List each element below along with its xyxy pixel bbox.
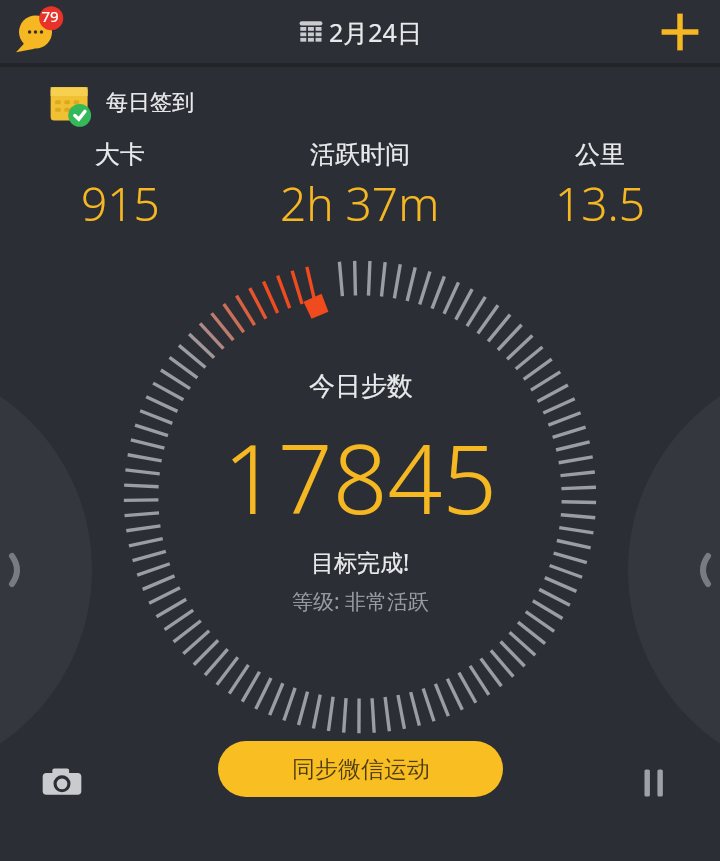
staticText: 13.5 (555, 172, 646, 235)
button[interactable]: 每日签到 (48, 81, 194, 125)
staticText: 同步微信运动 (292, 755, 430, 784)
button[interactable]: 活跃时间 (240, 139, 480, 235)
staticText: 2月24日 (329, 15, 422, 49)
staticText: 大卡 (95, 139, 145, 170)
staticText: 17845 (223, 411, 498, 542)
button[interactable]: 同步微信运动 (218, 741, 503, 797)
button[interactable]: 2月24日 (298, 15, 422, 49)
button[interactable]: 大卡 (0, 139, 240, 235)
staticText: 79 (39, 6, 61, 26)
staticText: 每日签到 (106, 89, 194, 117)
staticText: 今日步数 (309, 370, 413, 403)
staticText: 活跃时间 (310, 139, 410, 170)
button[interactable]: Add (656, 8, 704, 56)
staticText: 915 (81, 172, 160, 235)
button[interactable]: Messages (12, 4, 68, 60)
button[interactable]: 公里 (480, 139, 720, 235)
staticText: 公里 (575, 139, 625, 170)
staticText: 目标完成! (311, 546, 410, 577)
button[interactable]: Camera (36, 757, 88, 809)
staticText: 等级: 非常活跃 (292, 587, 430, 616)
staticText: 2h 37m (280, 172, 440, 235)
button[interactable]: Pause (628, 757, 680, 809)
